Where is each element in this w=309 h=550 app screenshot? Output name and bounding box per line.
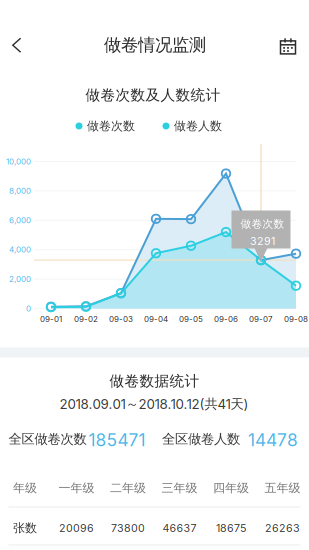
staticText: 三年级 <box>161 480 197 495</box>
staticText: 09-03 <box>109 314 133 324</box>
staticText: 全区做卷次数 <box>8 431 86 447</box>
staticText: 张数 <box>13 520 37 535</box>
staticText: 09-04 <box>144 314 168 324</box>
staticText: 09-01 <box>40 314 62 324</box>
staticText: 73800 <box>111 521 145 534</box>
staticText: 09-02 <box>74 314 98 324</box>
button[interactable]: Back <box>0 22 39 68</box>
staticText: 46637 <box>162 521 196 534</box>
staticText: 0 <box>26 304 31 313</box>
staticText: 做卷次数 <box>87 118 135 133</box>
staticText: 14478 <box>248 429 298 450</box>
staticText: 一年级 <box>58 480 94 495</box>
staticText: 五年级 <box>264 480 300 495</box>
staticText: 3291 <box>250 234 275 247</box>
staticText: 10,000 <box>6 157 31 166</box>
staticText: 09-07 <box>249 314 273 324</box>
staticText: 185471 <box>88 429 145 450</box>
staticText: 年级 <box>13 480 37 495</box>
staticText: 09-05 <box>179 314 203 324</box>
staticText: 做卷数据统计 <box>109 372 199 390</box>
staticText: 2,000 <box>9 274 31 284</box>
staticText: 18675 <box>216 521 246 534</box>
staticText: 09-08 <box>284 314 308 324</box>
staticText: 8,000 <box>9 186 31 196</box>
staticText: 做卷次数 <box>240 217 284 231</box>
staticText: 全区做卷人数 <box>162 431 240 447</box>
staticText: 6,000 <box>9 215 31 225</box>
staticText: 4,000 <box>9 245 31 255</box>
staticText: 四年级 <box>213 480 249 495</box>
staticText: 做卷情况监测 <box>104 34 206 56</box>
staticText: 做卷人数 <box>174 118 222 133</box>
staticText: 2018.09.01～2018.10.12(共41天) <box>59 396 248 412</box>
staticText: 09-06 <box>214 314 238 324</box>
staticText: 二年级 <box>110 480 146 495</box>
staticText: 20096 <box>59 521 94 534</box>
staticText: 做卷次数及人数统计 <box>85 86 220 104</box>
button[interactable]: Select date range <box>267 24 309 68</box>
staticText: 26263 <box>265 521 300 534</box>
